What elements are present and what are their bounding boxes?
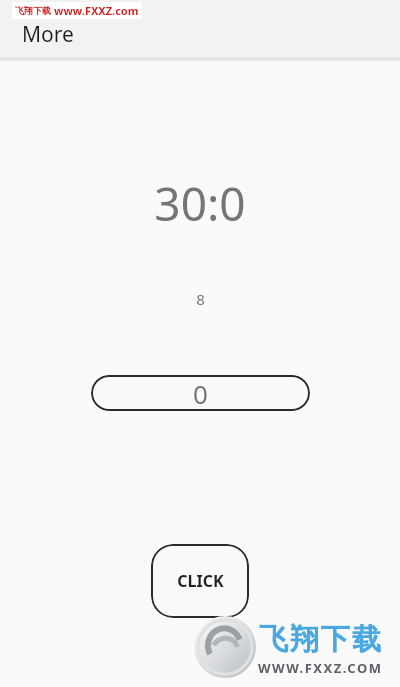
staticText: More bbox=[22, 20, 74, 49]
staticText: www.FXXZ.com bbox=[54, 3, 139, 18]
staticText: 飞翔下载 bbox=[258, 621, 382, 658]
staticText: 飞翔下载 bbox=[15, 5, 51, 16]
staticText: CLICK bbox=[177, 570, 224, 592]
staticText: 0 bbox=[193, 376, 208, 411]
staticText: 30:0 bbox=[154, 172, 246, 235]
staticText: WWW.FXXZ.COM bbox=[258, 659, 383, 677]
button[interactable]: CLICK bbox=[151, 544, 249, 618]
staticText: 8 bbox=[196, 289, 205, 309]
button[interactable]: 0 bbox=[91, 375, 310, 411]
